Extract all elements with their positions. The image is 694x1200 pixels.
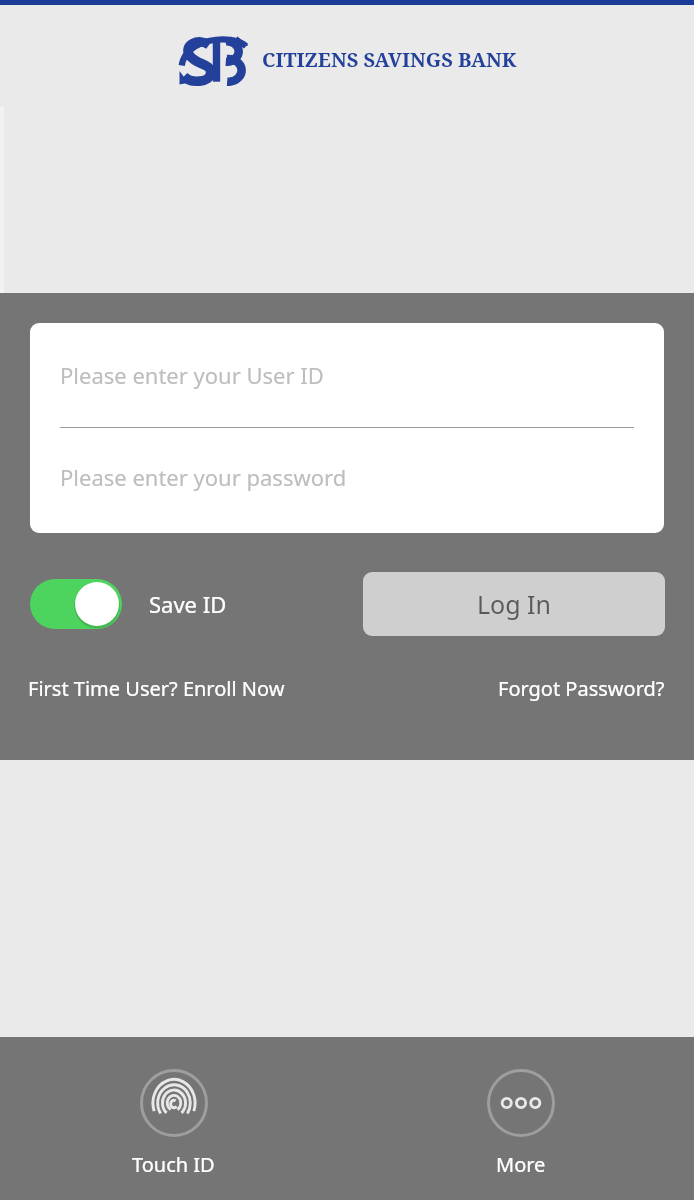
staticText: Please enter your password: [60, 462, 347, 492]
button[interactable]: Log In: [363, 572, 665, 636]
button[interactable]: Touch ID: [0, 1037, 347, 1200]
button[interactable]: Please enter your password: [30, 428, 664, 533]
staticText: Please enter your User ID: [60, 360, 324, 390]
button[interactable]: Save ID toggle, on: [30, 579, 122, 629]
button[interactable]: More: [347, 1037, 694, 1200]
staticText: Log In: [477, 587, 552, 621]
button[interactable]: First Time User? Enroll Now: [28, 675, 285, 702]
staticText: Forgot Password?: [498, 675, 665, 702]
staticText: Touch ID: [132, 1151, 215, 1178]
button[interactable]: Forgot Password?: [498, 675, 665, 702]
staticText: CITIZENS SAVINGS BANK: [262, 46, 517, 73]
staticText: Save ID: [149, 589, 227, 619]
staticText: First Time User? Enroll Now: [28, 675, 285, 702]
button[interactable]: Save ID toggle, on: [30, 579, 227, 629]
button[interactable]: Please enter your User ID: [30, 323, 664, 427]
staticText: More: [496, 1151, 546, 1178]
